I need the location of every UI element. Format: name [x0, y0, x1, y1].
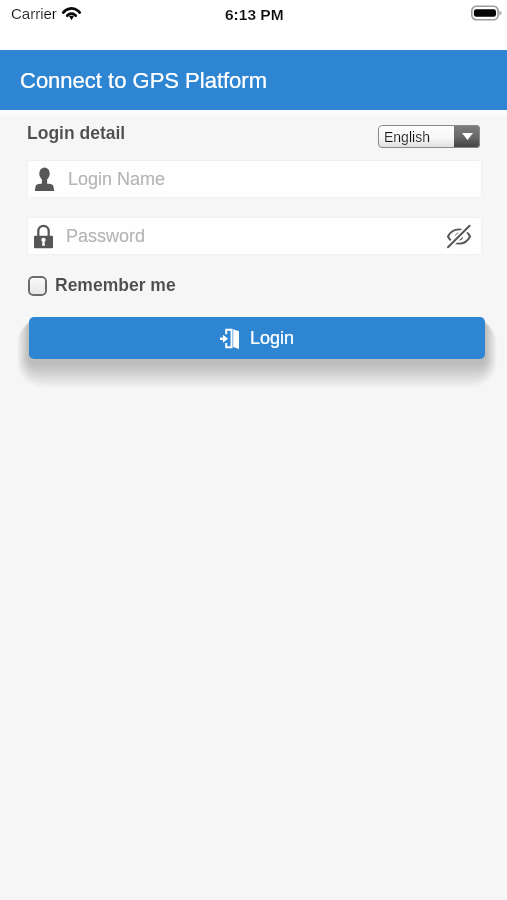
button[interactable]: Password	[27, 217, 482, 255]
staticText: Login	[250, 328, 295, 348]
staticText: English	[384, 129, 430, 145]
staticText: Remember me	[55, 275, 176, 295]
staticText: 6:13 PM	[225, 6, 284, 23]
button[interactable]: Show password	[442, 221, 476, 251]
button[interactable]: English	[378, 125, 480, 148]
button[interactable]: Connect to GPS Platform	[0, 50, 507, 110]
staticText: Password	[66, 226, 146, 246]
staticText: Connect to GPS Platform	[20, 68, 267, 93]
staticText: Login Name	[68, 169, 166, 189]
button[interactable]: Login Name	[27, 160, 482, 198]
button[interactable]: Login	[29, 317, 485, 359]
button[interactable]: Remember me	[28, 276, 176, 296]
staticText: Login detail	[27, 123, 126, 143]
staticText: Carrier	[11, 5, 57, 22]
